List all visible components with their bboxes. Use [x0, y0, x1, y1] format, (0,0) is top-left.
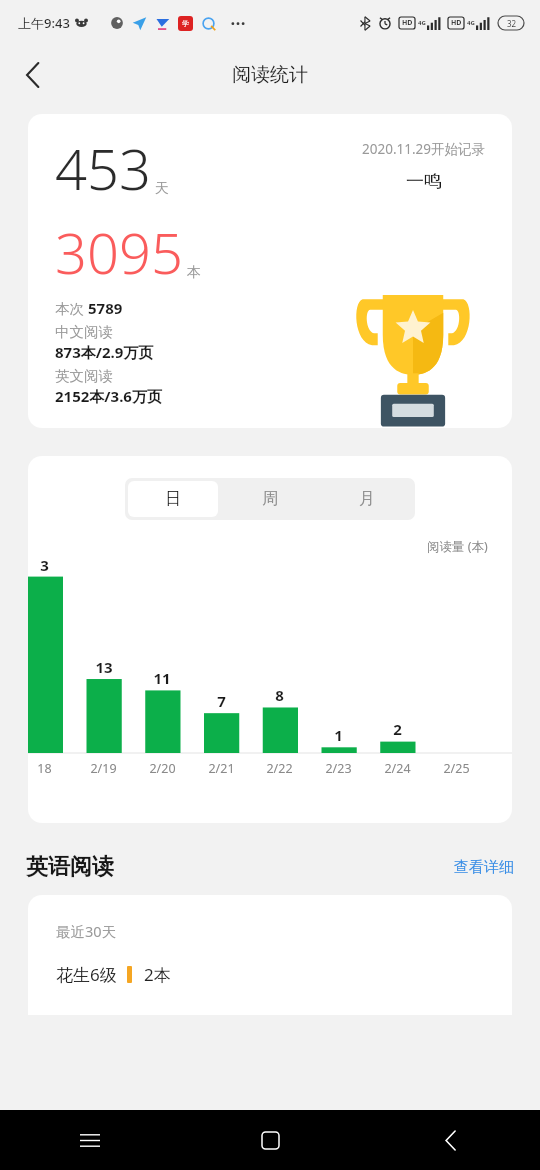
staticText: 2/19: [90, 760, 117, 777]
button[interactable]: Recent apps: [0, 1110, 180, 1170]
button[interactable]: 2020.11.29开始记录: [28, 114, 512, 428]
staticText: 2/25: [443, 760, 470, 777]
staticText: 上午9:43: [18, 14, 70, 32]
staticText: 3: [40, 555, 49, 575]
staticText: 本次: [55, 298, 88, 318]
staticText: 2/23: [325, 760, 352, 777]
staticText: 32: [507, 18, 517, 29]
button[interactable]: Back: [360, 1110, 540, 1170]
staticText: HD: [402, 18, 413, 28]
staticText: 查看详细: [454, 858, 514, 877]
staticText: 2/21: [208, 760, 235, 777]
staticText: 4G: [467, 19, 475, 27]
staticText: 7: [217, 691, 226, 711]
button[interactable]: 查看详细: [454, 858, 514, 877]
button[interactable]: 周: [224, 481, 315, 517]
staticText: 2152本/3.6万页: [55, 386, 162, 406]
staticText: 英语阅读: [26, 853, 114, 881]
staticText: 4G: [418, 19, 426, 27]
staticText: 5789: [88, 298, 123, 318]
staticText: HD: [451, 18, 462, 28]
staticText: 周: [262, 489, 278, 509]
staticText: 8: [275, 685, 284, 705]
staticText: 中文阅读: [55, 323, 113, 341]
button[interactable]: Home: [180, 1110, 360, 1170]
button[interactable]: 日: [128, 481, 218, 517]
staticText: 月: [359, 489, 375, 509]
staticText: 2020.11.29开始记录: [362, 140, 486, 158]
staticText: 2/24: [384, 760, 411, 777]
staticText: 18: [37, 760, 52, 777]
staticText: 2/20: [149, 760, 176, 777]
button[interactable]: 月: [321, 481, 412, 517]
staticText: 873本/2.9万页: [55, 342, 154, 362]
staticText: 3095: [55, 214, 183, 290]
staticText: 453: [55, 130, 151, 206]
staticText: 最近30天: [56, 921, 117, 941]
staticText: 阅读量 (本): [427, 538, 488, 555]
staticText: 2本: [144, 963, 171, 986]
staticText: 天: [155, 180, 169, 198]
staticText: 学: [182, 19, 189, 28]
button[interactable]: Back: [8, 51, 56, 99]
staticText: 2: [393, 719, 402, 739]
staticText: 英文阅读: [55, 367, 113, 385]
staticText: 阅读统计: [232, 63, 308, 87]
staticText: 本: [187, 264, 201, 282]
staticText: 1: [334, 725, 343, 745]
staticText: 11: [153, 668, 171, 688]
staticText: 一鸣: [406, 170, 442, 193]
staticText: 2/22: [266, 760, 293, 777]
staticText: 日: [165, 489, 181, 509]
staticText: 花生6级: [56, 963, 117, 986]
staticText: 13: [95, 657, 113, 677]
